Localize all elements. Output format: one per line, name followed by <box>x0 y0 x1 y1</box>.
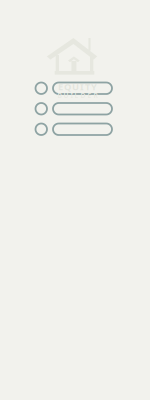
button[interactable]: Checklist item 3 <box>35 123 112 135</box>
staticText: BUILDER <box>57 91 97 100</box>
button[interactable]: Checklist item 2 <box>35 103 112 114</box>
button[interactable]: Checklist item 1 <box>35 82 112 94</box>
staticText: EQUITY <box>58 80 97 93</box>
